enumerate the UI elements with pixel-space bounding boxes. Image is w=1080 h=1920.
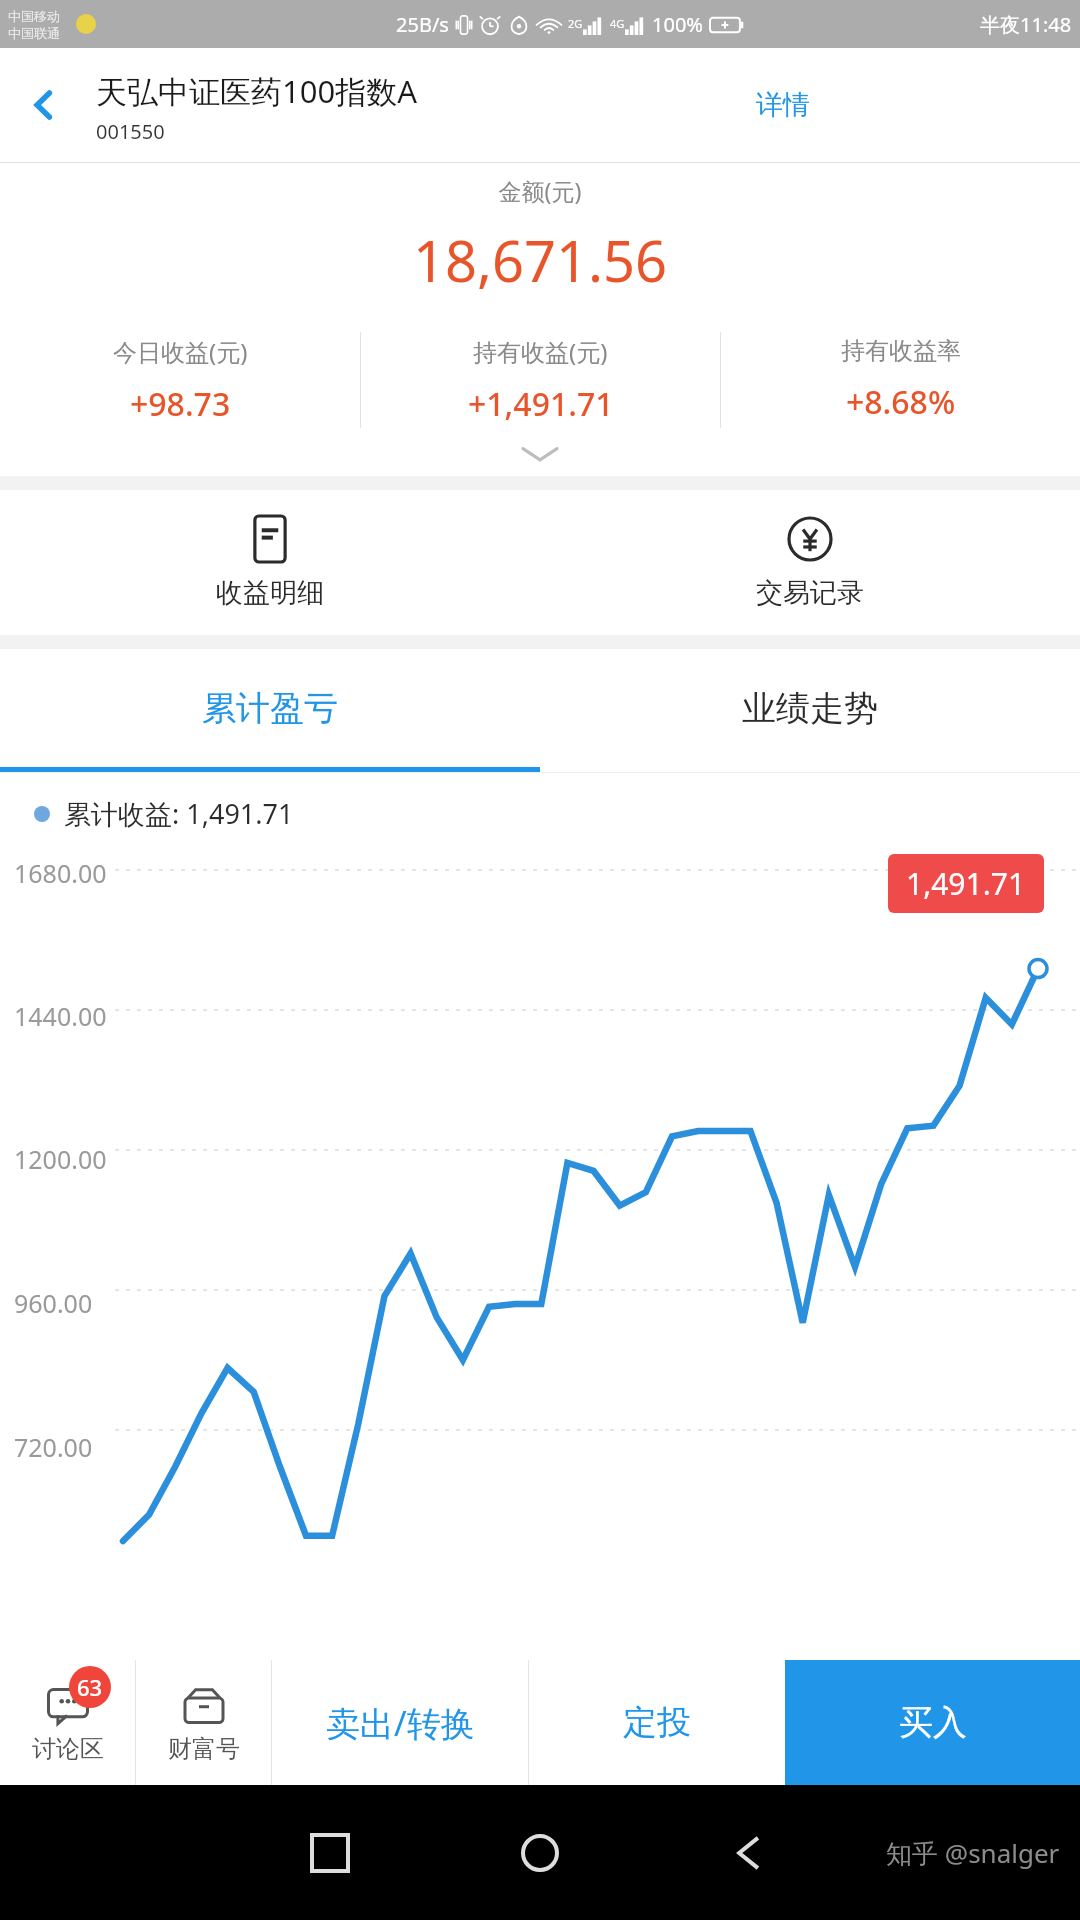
staticText: 知乎 @snalger <box>886 1835 1060 1871</box>
staticText: 1680.00 <box>14 856 107 890</box>
button[interactable]: 财富号 <box>136 1660 271 1785</box>
staticText: 累计收益: 1,491.71 <box>64 795 294 832</box>
staticText: +98.73 <box>130 382 231 426</box>
staticText: 720.00 <box>14 1430 93 1464</box>
staticText: 18,671.56 <box>0 222 1080 298</box>
staticText: 中国移动 <box>8 8 60 24</box>
staticText: 卖出/转换 <box>326 1700 475 1746</box>
staticText: 2G <box>568 16 583 31</box>
button[interactable]: 买入 <box>785 1660 1080 1785</box>
staticText: 天弘中证医药100指数A <box>96 70 418 112</box>
button[interactable]: Home <box>435 1818 645 1888</box>
staticText: 累计盈亏 <box>202 687 338 730</box>
button[interactable]: Recents <box>225 1818 435 1888</box>
staticText: 详情 <box>756 88 810 122</box>
button[interactable]: 讨论区 <box>0 1660 135 1785</box>
button[interactable]: Back <box>10 71 78 139</box>
button[interactable]: 业绩走势 <box>540 649 1080 767</box>
staticText: 交易记录 <box>756 576 864 610</box>
staticText: 金额(元) <box>0 175 1080 206</box>
staticText: 半夜11:48 <box>980 11 1072 38</box>
staticText: 100% <box>652 11 703 38</box>
button[interactable]: 详情 <box>740 78 826 132</box>
staticText: 收益明细 <box>216 576 324 610</box>
staticText: 财富号 <box>168 1734 240 1764</box>
staticText: 今日收益(元) <box>113 335 248 368</box>
staticText: 业绩走势 <box>742 687 878 730</box>
staticText: 买入 <box>899 1701 967 1744</box>
button[interactable]: Back <box>645 1818 855 1888</box>
button[interactable]: 收益明细 <box>0 490 540 635</box>
button[interactable]: 累计盈亏 <box>0 649 540 767</box>
staticText: 001550 <box>96 118 165 145</box>
staticText: 960.00 <box>14 1286 93 1320</box>
staticText: 持有收益率 <box>841 336 961 366</box>
staticText: 定投 <box>623 1701 691 1744</box>
staticText: 4G <box>610 16 625 31</box>
button[interactable]: 交易记录 <box>540 490 1080 635</box>
staticText: +8.68% <box>846 380 956 424</box>
staticText: +1,491.71 <box>468 382 614 426</box>
staticText: 讨论区 <box>32 1734 104 1764</box>
staticText: 1440.00 <box>14 999 107 1033</box>
staticText: 中国联通 <box>8 25 60 41</box>
button[interactable]: Expand <box>0 432 1080 476</box>
staticText: 持有收益(元) <box>473 335 608 368</box>
staticText: 1,491.71 <box>906 863 1026 904</box>
staticText: 25B/s <box>396 11 449 38</box>
staticText: 63 <box>77 1672 103 1702</box>
staticText: 1200.00 <box>14 1142 107 1176</box>
button[interactable]: 定投 <box>529 1660 785 1785</box>
button[interactable]: 卖出/转换 <box>272 1660 528 1785</box>
